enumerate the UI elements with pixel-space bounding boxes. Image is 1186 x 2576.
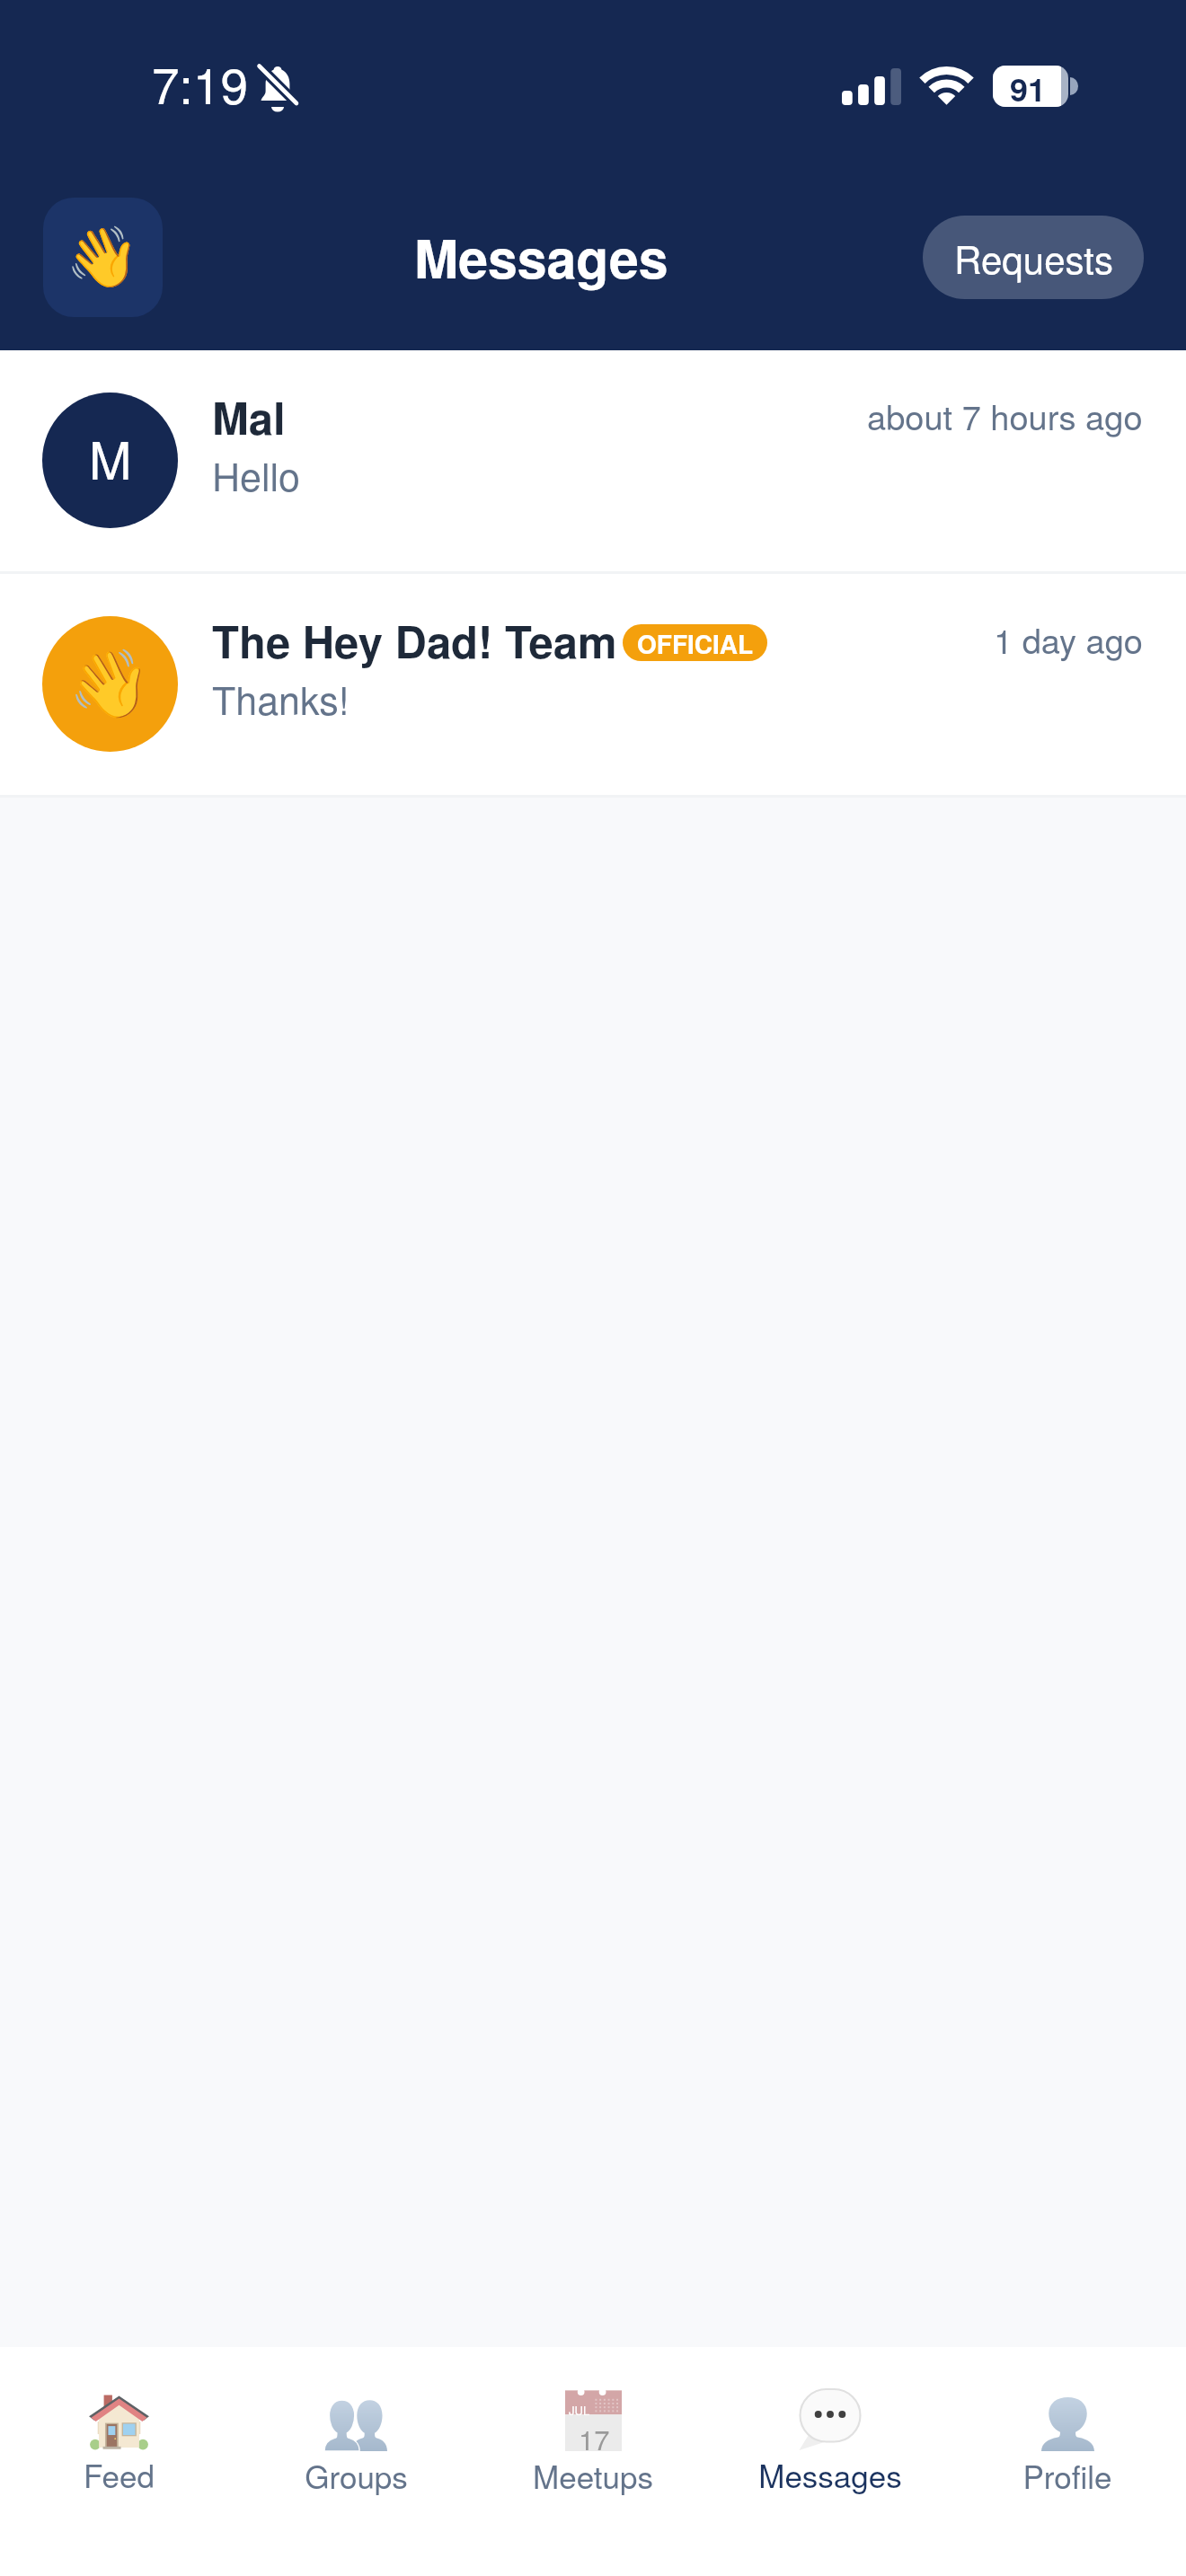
staticText: Messages [414, 219, 668, 295]
staticText: Meetups [533, 2453, 653, 2498]
staticText: Thanks! [212, 671, 350, 727]
staticText: Mal [212, 385, 286, 448]
staticText: The Hey Dad! Team [212, 609, 617, 672]
staticText: 1 day ago [994, 614, 1143, 663]
button[interactable]: Feed [0, 2347, 237, 2497]
button[interactable]: Profile [949, 2347, 1186, 2498]
staticText: Hello [212, 447, 300, 503]
staticText: Profile [1022, 2453, 1112, 2498]
staticText: 👋 [66, 223, 140, 292]
staticText: JUL [569, 2402, 590, 2419]
staticText: 7:19 [152, 48, 249, 119]
button[interactable]: M [0, 350, 1186, 571]
staticText: 👋 [68, 645, 152, 723]
staticText: about 7 hours ago [867, 391, 1143, 439]
staticText: OFFICIAL [637, 625, 754, 661]
staticText: 91 [1010, 66, 1047, 106]
staticText: 17 [579, 2418, 610, 2457]
staticText: M [89, 421, 132, 495]
staticText: Requests [954, 231, 1113, 285]
staticText: Groups [305, 2453, 408, 2498]
button[interactable]: Hey Dad app [43, 198, 163, 317]
button[interactable]: Messages [712, 2347, 949, 2497]
staticText: Feed [84, 2452, 155, 2497]
button[interactable]: Groups [237, 2347, 474, 2498]
staticText: Messages [758, 2452, 902, 2497]
button[interactable]: 👋 [0, 574, 1186, 795]
button[interactable]: JUL [474, 2347, 712, 2498]
button[interactable]: Requests [923, 216, 1144, 299]
